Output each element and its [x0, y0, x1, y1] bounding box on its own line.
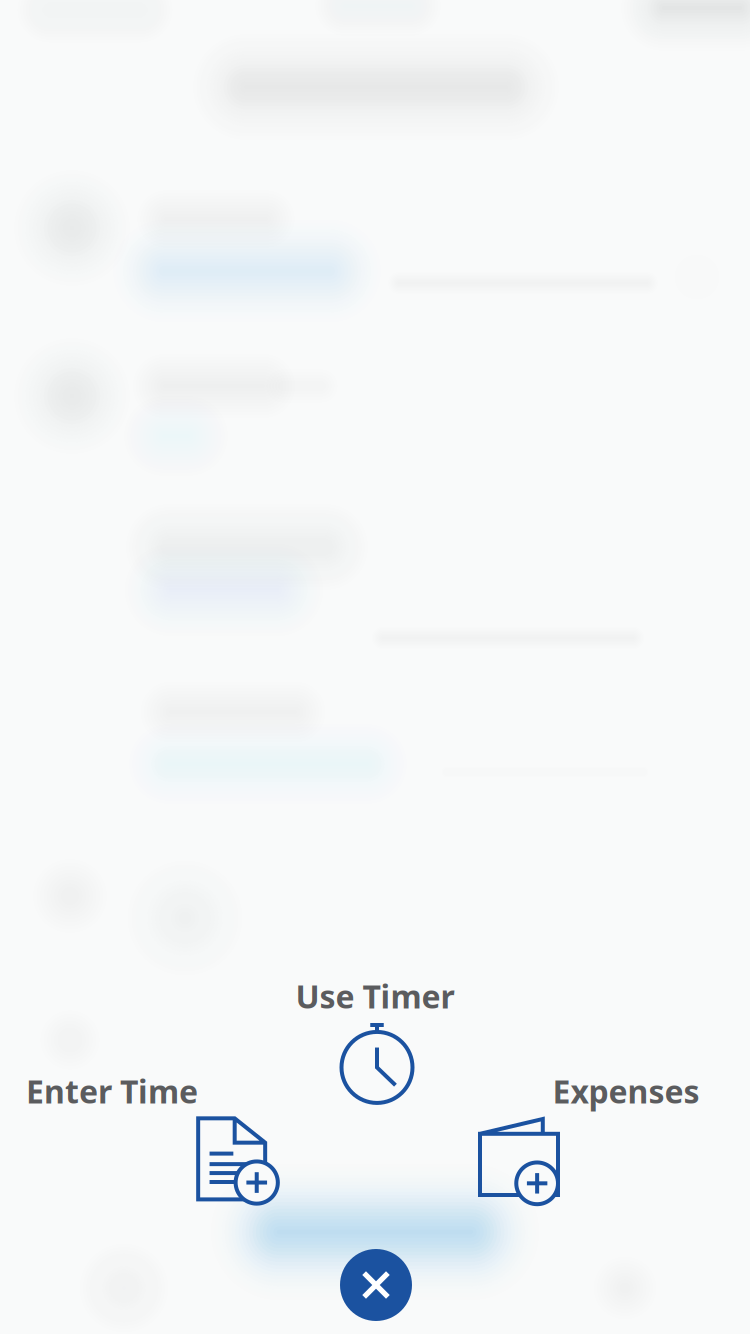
staticText: Enter Time: [26, 1070, 198, 1112]
button[interactable]: Enter Time: [12, 1055, 212, 1215]
staticText: Use Timer: [295, 975, 454, 1017]
staticText: Expenses: [552, 1070, 699, 1112]
button[interactable]: Expenses: [526, 1055, 726, 1215]
button[interactable]: Use Timer: [265, 960, 485, 1120]
button[interactable]: Close: [340, 1249, 412, 1321]
